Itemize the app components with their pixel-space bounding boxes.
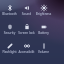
button[interactable]: Screen lock (18, 19, 35, 38)
other: Volume (40, 42, 48, 50)
button[interactable]: Battery (35, 19, 52, 38)
other: Bluetooth (6, 4, 14, 12)
other: Screen lock (23, 23, 31, 31)
other: Sound (23, 4, 31, 12)
other: Battery (40, 23, 48, 31)
staticText: Flashlight (1, 50, 18, 54)
staticText: Bluetooth (1, 12, 18, 16)
staticText: Sound (18, 12, 35, 16)
button[interactable]: Security (1, 19, 18, 38)
staticText: Brightness (35, 12, 52, 16)
staticText: Volume (35, 50, 52, 54)
staticText: Screen lock (18, 31, 35, 35)
button[interactable]: Accessibility (18, 38, 35, 57)
button[interactable]: Volume (35, 38, 52, 57)
other: Security (6, 23, 14, 31)
other: Brightness (40, 4, 48, 12)
other: Accessibility (23, 42, 31, 50)
staticText: Accessibility (18, 50, 35, 54)
button[interactable]: Flashlight (1, 38, 18, 57)
staticText: Battery (35, 31, 52, 35)
button[interactable]: Sound (18, 0, 35, 19)
staticText: Security (1, 31, 18, 35)
button[interactable]: Bluetooth (1, 0, 18, 19)
other: Flashlight (6, 42, 14, 50)
button[interactable]: Brightness (35, 0, 52, 19)
